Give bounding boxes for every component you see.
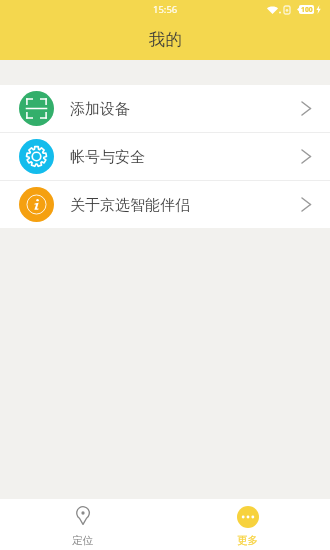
button[interactable]: 关于京选智能伴侣	[0, 181, 330, 228]
staticText: 我的	[149, 29, 182, 50]
staticText: 15:56	[153, 3, 178, 16]
staticText: 帐号与安全	[70, 148, 145, 167]
button[interactable]: 添加设备	[0, 85, 330, 132]
staticText: 添加设备	[70, 100, 130, 119]
staticText: 定位	[72, 534, 93, 547]
staticText: 更多	[237, 534, 258, 547]
staticText: 关于京选智能伴侣	[70, 196, 190, 215]
button[interactable]: 定位	[0, 499, 165, 550]
button[interactable]: 更多	[165, 499, 330, 550]
button[interactable]: 帐号与安全	[0, 133, 330, 180]
staticText: 100	[301, 5, 313, 14]
